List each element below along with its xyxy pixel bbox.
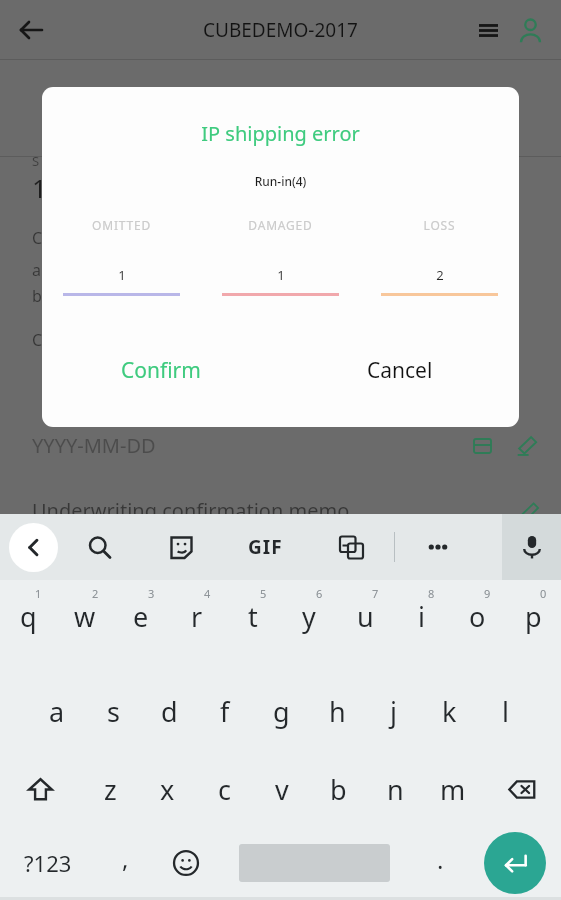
button[interactable]: 2 <box>57 580 113 672</box>
staticText: f <box>220 693 230 730</box>
button[interactable]: 3 <box>113 580 169 672</box>
staticText: 2 <box>92 586 99 601</box>
staticText: t <box>248 598 258 635</box>
button[interactable]: b <box>310 750 367 828</box>
staticText: k <box>442 693 457 730</box>
button[interactable]: v <box>253 750 310 828</box>
button[interactable]: g <box>253 672 309 750</box>
staticText: g <box>273 693 290 730</box>
button[interactable]: Space <box>218 828 411 897</box>
staticText: z <box>104 771 117 808</box>
staticText: IP shipping error <box>42 120 519 147</box>
staticText: i <box>418 598 425 635</box>
staticText: 7 <box>372 586 379 601</box>
button[interactable]: Search <box>58 514 140 580</box>
staticText: 8 <box>428 586 435 601</box>
button[interactable]: More <box>395 514 481 580</box>
button[interactable]: Enter <box>469 828 561 897</box>
staticText: LOSS <box>360 217 519 233</box>
staticText: 1 <box>118 266 126 284</box>
button[interactable]: d <box>141 672 197 750</box>
button[interactable]: Confirm <box>42 346 280 394</box>
button[interactable]: Backspace <box>481 750 561 828</box>
staticText: h <box>329 693 346 730</box>
staticText: e <box>133 598 149 635</box>
button[interactable]: Edit <box>509 428 543 462</box>
button[interactable]: Translate <box>308 514 394 580</box>
staticText: Cancel <box>367 356 433 385</box>
button[interactable]: 2 <box>360 266 519 296</box>
staticText: , <box>122 842 129 875</box>
staticText: p <box>525 598 542 635</box>
button[interactable]: Shift <box>0 750 81 828</box>
button[interactable]: 8 <box>393 580 449 672</box>
button[interactable]: 1 <box>0 580 57 672</box>
staticText: S <box>32 152 40 170</box>
staticText: m <box>440 771 466 808</box>
staticText: OMITTED <box>42 217 201 233</box>
button[interactable]: a <box>29 672 85 750</box>
staticText: 4 <box>204 586 211 601</box>
button[interactable]: s <box>85 672 141 750</box>
staticText: GIF <box>248 534 283 560</box>
button[interactable]: GIF <box>222 514 308 580</box>
button[interactable]: Voice input <box>502 514 561 580</box>
staticText: o <box>469 598 486 635</box>
button[interactable]: f <box>197 672 253 750</box>
button[interactable]: j <box>365 672 421 750</box>
button[interactable]: Back <box>9 523 58 572</box>
staticText: Run-in(4) <box>42 173 519 189</box>
button[interactable]: Pick date <box>465 428 499 462</box>
button[interactable]: 7 <box>337 580 393 672</box>
button[interactable]: l <box>477 672 533 750</box>
staticText: 0 <box>540 586 547 601</box>
staticText: a <box>49 693 65 730</box>
staticText: C <box>32 329 43 351</box>
button[interactable]: 0 <box>505 580 561 672</box>
button[interactable]: 5 <box>225 580 281 672</box>
button[interactable]: 1 <box>42 266 201 296</box>
button[interactable]: Back <box>8 7 54 53</box>
button[interactable]: Comma <box>96 828 154 897</box>
staticText: Underwriting confirmation memo <box>32 497 350 524</box>
button[interactable]: 6 <box>281 580 337 672</box>
staticText: j <box>390 693 397 730</box>
staticText: 1 <box>32 170 47 205</box>
staticText: q <box>20 598 37 635</box>
button[interactable]: h <box>309 672 365 750</box>
staticText: . <box>437 843 444 876</box>
button[interactable]: 9 <box>449 580 505 672</box>
button[interactable]: Account <box>509 9 551 51</box>
button[interactable]: Period <box>411 828 469 897</box>
button[interactable]: Stickers <box>140 514 222 580</box>
button[interactable]: Emoji <box>154 828 218 897</box>
button[interactable]: c <box>196 750 253 828</box>
button[interactable]: Cancel <box>280 346 519 394</box>
staticText: 5 <box>260 586 267 601</box>
button[interactable]: n <box>367 750 424 828</box>
button[interactable]: ?123 <box>0 828 96 897</box>
staticText: l <box>502 693 509 730</box>
button[interactable]: Menu <box>467 9 509 51</box>
staticText: b <box>330 771 347 808</box>
staticText: Confirm <box>121 356 201 385</box>
staticText: y <box>302 598 316 635</box>
staticText: d <box>161 693 178 730</box>
staticText: DAMAGED <box>201 217 360 233</box>
staticText: 3 <box>148 586 155 601</box>
staticText: b <box>32 285 42 307</box>
button[interactable]: m <box>424 750 481 828</box>
staticText: CUBEDEMO-2017 <box>203 17 358 43</box>
staticText: u <box>357 598 374 635</box>
staticText: 2 <box>436 266 444 284</box>
button[interactable]: 1 <box>201 266 360 296</box>
staticText: 6 <box>316 586 323 601</box>
staticText: x <box>160 771 175 808</box>
button[interactable]: 4 <box>169 580 225 672</box>
staticText: w <box>74 598 96 635</box>
staticText: 9 <box>484 586 491 601</box>
button[interactable]: x <box>139 750 196 828</box>
staticText: s <box>107 693 120 730</box>
button[interactable]: z <box>81 750 139 828</box>
button[interactable]: k <box>421 672 477 750</box>
